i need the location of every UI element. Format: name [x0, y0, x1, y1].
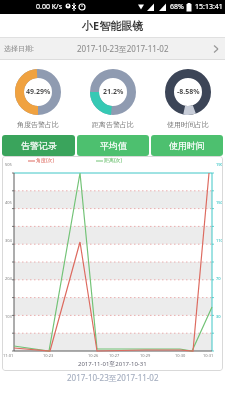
staticText: 距离(次) — [104, 157, 123, 164]
button[interactable]: 使用时间 — [151, 135, 223, 156]
staticText: 距离告警占比 — [92, 120, 134, 129]
staticText: 21.2% — [103, 87, 124, 97]
staticText: 0.00 K/s — [36, 2, 62, 12]
staticText: 角度(次) — [36, 157, 55, 164]
staticText: 103 — [5, 314, 12, 319]
staticText: 10:29 — [140, 353, 151, 358]
staticText: 使用时间 — [169, 140, 205, 151]
staticText: 告警记录 — [21, 140, 57, 151]
button[interactable]: 告警记录 — [2, 135, 75, 156]
staticText: 304 — [5, 238, 12, 243]
staticText: 30 — [216, 314, 221, 319]
staticText: 10:30 — [175, 353, 186, 358]
staticText: 10:31 — [203, 353, 214, 358]
staticText: 150 — [216, 200, 223, 205]
staticText: 204 — [5, 276, 12, 281]
staticText: 11:01 — [3, 353, 14, 358]
button[interactable]: 平均值 — [77, 135, 149, 156]
button[interactable]: 小E智能眼镜 — [0, 14, 225, 37]
staticText: -8.58% — [177, 87, 200, 97]
staticText: 190 — [216, 162, 223, 167]
staticText: 49.29% — [26, 87, 51, 97]
staticText: 110 — [216, 238, 223, 243]
staticText: 10:23 — [43, 353, 54, 358]
staticText: 选择日期: — [4, 44, 34, 54]
staticText: 68% — [170, 2, 184, 12]
staticText: 使用时间占比 — [167, 120, 209, 129]
staticText: 2017-10-23至2017-11-02 — [77, 43, 169, 54]
staticText: 70 — [216, 276, 221, 281]
staticText: 405 — [5, 200, 12, 205]
staticText: 10:26 — [88, 353, 99, 358]
staticText: 10:27 — [109, 353, 120, 358]
staticText: 505 — [5, 162, 12, 167]
staticText: 角度告警占比 — [17, 120, 59, 129]
staticText: 平均值 — [100, 140, 127, 151]
staticText: 2017-10-23至2017-11-02 — [67, 372, 159, 383]
staticText: 2017-11-01至2017-10-31 — [78, 360, 147, 368]
button[interactable]: 选择日期: — [0, 38, 225, 59]
staticText: 小E智能眼镜 — [82, 18, 144, 33]
staticText: 15:13:41 — [195, 2, 223, 12]
